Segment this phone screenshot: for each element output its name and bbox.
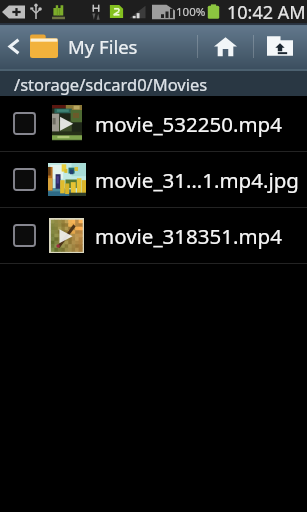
button[interactable]: Home	[203, 23, 247, 69]
button[interactable]: Up one level	[258, 23, 302, 69]
button[interactable]: /storage/sdcard0/Movies	[0, 71, 307, 96]
staticText: movie_532250.mp4	[95, 110, 282, 138]
button[interactable]: Select movie_532250.mp4	[13, 112, 36, 135]
button[interactable]: Back	[0, 23, 150, 69]
staticText: 100%	[176, 4, 206, 20]
staticText: /storage/sdcard0/Movies	[14, 73, 208, 95]
staticText: 10:42 AM	[227, 0, 306, 23]
button[interactable]: Select movie_318351.mp4	[0, 208, 307, 263]
other: Back	[8, 39, 19, 54]
button[interactable]: Select movie_532250.mp4	[0, 96, 307, 151]
button[interactable]: Select movie_318351.mp4	[13, 224, 36, 247]
button[interactable]: Select movie_31…1.mp4.jpg	[13, 168, 36, 191]
staticText: My Files	[68, 34, 138, 59]
staticText: movie_318351.mp4	[95, 222, 282, 250]
staticText: movie_31…1.mp4.jpg	[95, 166, 299, 194]
button[interactable]: Select movie_31…1.mp4.jpg	[0, 152, 307, 207]
